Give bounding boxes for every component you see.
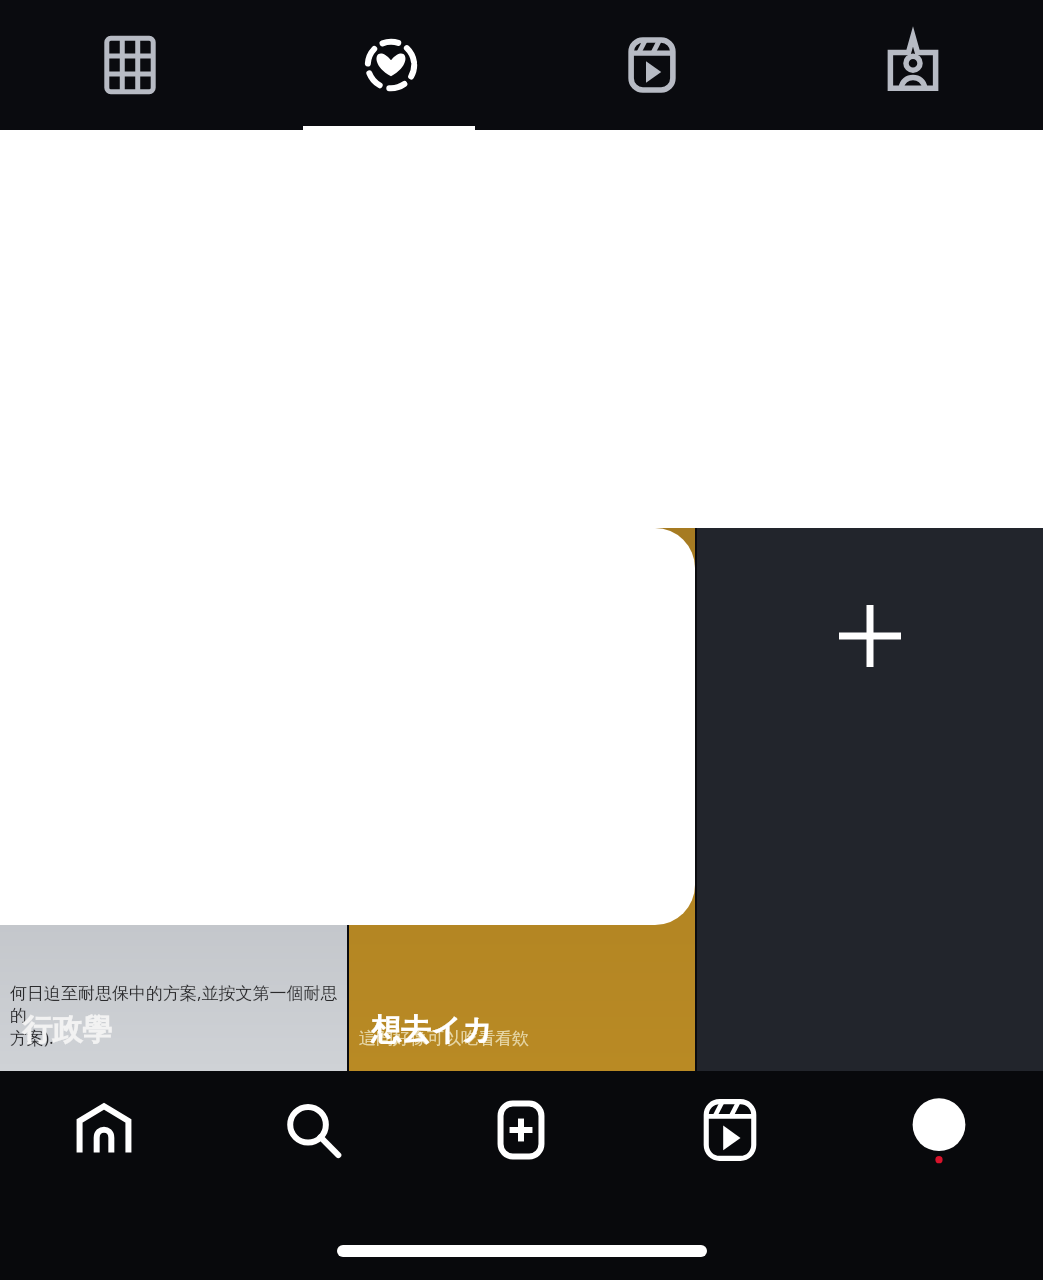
button[interactable]: Story highlights bbox=[260, 0, 521, 130]
staticText: 行政學 bbox=[22, 1011, 112, 1049]
staticText: 何日迫至耐思保中的方案,並按文第一個耐思的 方案). bbox=[10, 981, 339, 1049]
button[interactable]: Tagged bbox=[782, 0, 1043, 130]
button[interactable]: Search bbox=[208, 1071, 416, 1189]
button[interactable]: 這間好像可以吃看看欸 bbox=[349, 200, 695, 1071]
button[interactable]: Home bbox=[0, 1071, 208, 1189]
button[interactable]: Reels bbox=[521, 0, 782, 130]
button[interactable]: 何日迫至耐思保中的方案,並按文第一個耐思的 方案). bbox=[0, 200, 347, 1071]
button[interactable]: Add new highlight bbox=[697, 200, 1043, 1071]
button[interactable]: Create bbox=[416, 1071, 625, 1189]
button[interactable]: Profile bbox=[834, 1071, 1043, 1189]
button[interactable]: Posts grid bbox=[0, 0, 260, 130]
button[interactable]: Reels bbox=[625, 1071, 834, 1189]
staticText: 這間好像可以吃看看欸 bbox=[359, 1028, 529, 1049]
staticText: 想去イカ bbox=[371, 1011, 493, 1049]
